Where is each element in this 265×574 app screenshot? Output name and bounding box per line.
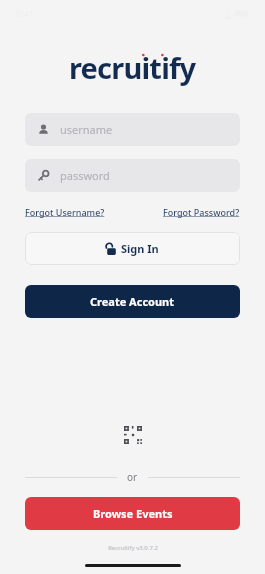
staticText: Browse Events — [93, 506, 173, 521]
button[interactable]: password — [25, 159, 240, 192]
staticText: Create Account — [90, 294, 175, 309]
button[interactable]: Browse Events — [25, 497, 240, 530]
staticText: username — [60, 122, 113, 137]
button[interactable]: Forgot Username? — [25, 206, 105, 218]
button[interactable]: Scan QR code — [116, 418, 150, 452]
staticText: Forgot Username? — [25, 206, 105, 218]
staticText: or — [127, 470, 138, 484]
button[interactable]: Sign In — [25, 232, 240, 265]
staticText: recruitify — [69, 48, 196, 87]
button[interactable]: username — [25, 113, 240, 146]
staticText: Forgot Password? — [163, 206, 240, 218]
button[interactable]: Forgot Password? — [163, 206, 240, 218]
staticText: Recruitify v3.0.7.2 — [108, 544, 158, 552]
button[interactable]: Create Account — [25, 285, 240, 318]
staticText: password — [60, 168, 110, 183]
staticText: Sign In — [121, 241, 159, 256]
